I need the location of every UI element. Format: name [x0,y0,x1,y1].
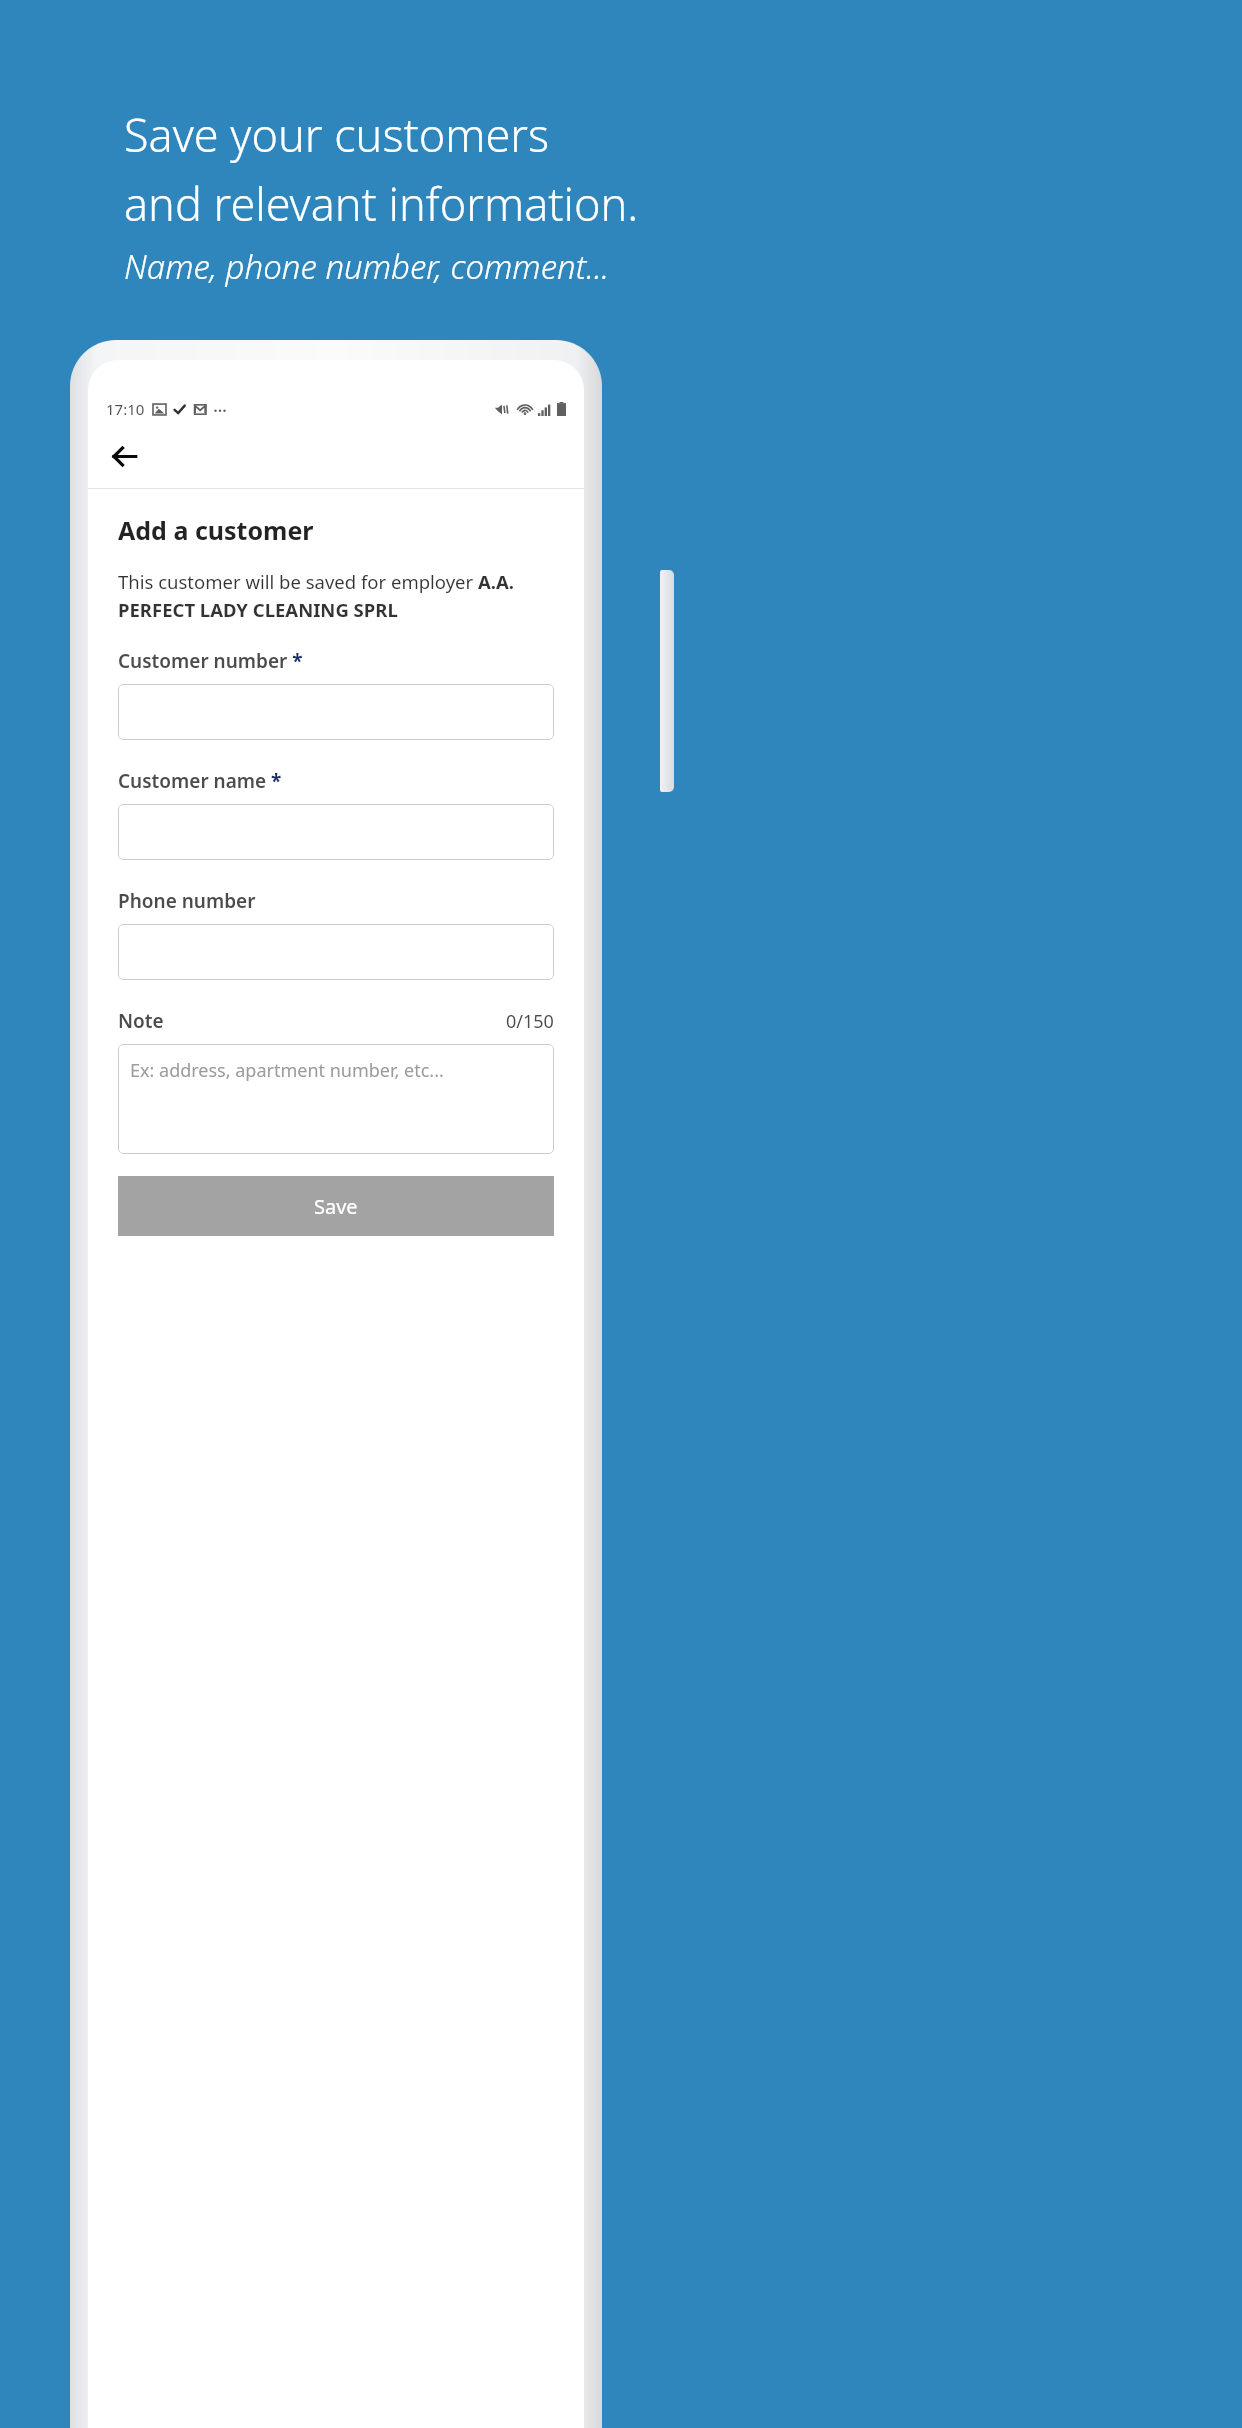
staticText: Note [118,1008,164,1034]
staticText: Add a customer [118,513,314,547]
staticText: Ex: address, apartment number, etc... [130,1058,444,1083]
staticText: Name, phone number, comment... [124,244,610,289]
staticText: and relevant information. [124,173,639,234]
button[interactable] [118,804,554,860]
button[interactable]: Save [118,1176,554,1236]
button[interactable] [118,924,554,980]
staticText: 17:10 [106,399,145,419]
staticText: Customer number * [118,648,303,674]
staticText: Phone number [118,888,256,914]
button[interactable] [118,684,554,740]
staticText: 0/150 [506,1009,554,1034]
staticText: Save your customers [124,104,550,165]
staticText: Customer name * [118,768,282,794]
staticText: Save [314,1193,358,1220]
button[interactable]: Ex: address, apartment number, etc... [118,1044,554,1154]
staticText: This customer will be saved for employer… [118,569,554,622]
button[interactable]: Back [100,432,148,480]
